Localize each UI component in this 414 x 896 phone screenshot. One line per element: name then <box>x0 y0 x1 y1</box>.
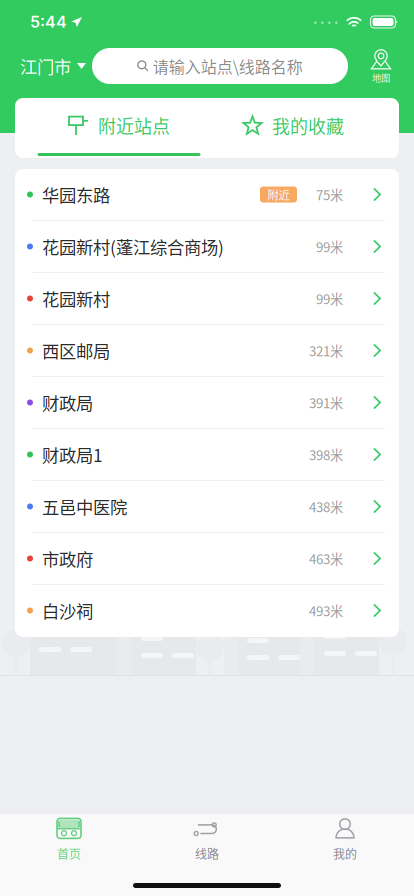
staticText: 99米 <box>316 289 343 308</box>
staticText: 我的 <box>333 845 357 862</box>
staticText: 438米 <box>309 497 343 516</box>
button[interactable]: 地图 <box>348 44 414 88</box>
button[interactable]: 江门市 <box>0 44 92 88</box>
staticText: • • • • <box>313 17 339 27</box>
staticText: 线路 <box>195 845 219 862</box>
staticText: 江门市 <box>20 53 71 79</box>
button[interactable]: 华园东路 <box>15 169 399 221</box>
staticText: 市政府 <box>42 546 93 571</box>
staticText: 5:44 <box>30 12 67 32</box>
staticText: 我的收藏 <box>272 112 344 139</box>
button[interactable]: 请输入站点\线路名称 <box>92 48 348 84</box>
staticText: 请输入站点\线路名称 <box>153 54 303 78</box>
staticText: 财政局 <box>42 390 93 415</box>
button[interactable]: 首页 <box>0 814 138 868</box>
staticText: 西区邮局 <box>42 338 110 363</box>
staticText: 75米 <box>316 185 343 204</box>
staticText: 地图 <box>372 71 390 84</box>
button[interactable]: 市政府 <box>15 533 399 585</box>
button[interactable]: 白沙祠 <box>15 585 399 637</box>
staticText: 463米 <box>309 549 343 568</box>
staticText: 99米 <box>316 237 343 256</box>
staticText: 白沙祠 <box>42 598 93 623</box>
button[interactable]: 花园新村 <box>15 273 399 325</box>
button[interactable]: 附近站点 <box>15 98 223 158</box>
staticText: 391米 <box>309 393 343 412</box>
staticText: 附近站点 <box>98 112 170 139</box>
staticText: 321米 <box>309 341 343 360</box>
staticText: 财政局1 <box>42 442 103 467</box>
button[interactable]: 财政局1 <box>15 429 399 481</box>
staticText: 花园新村 <box>42 286 110 311</box>
staticText: 附近 <box>267 186 289 203</box>
staticText: 398米 <box>309 445 343 464</box>
staticText: 首页 <box>57 845 81 862</box>
button[interactable]: 我的 <box>276 814 414 868</box>
button[interactable]: 我的收藏 <box>223 98 399 158</box>
staticText: 华园东路 <box>42 182 110 207</box>
staticText: 493米 <box>309 601 343 620</box>
staticText: 五邑中医院 <box>42 494 127 519</box>
button[interactable]: 花园新村(蓬江综合商场) <box>15 221 399 273</box>
button[interactable]: 线路 <box>138 814 276 868</box>
button[interactable]: 五邑中医院 <box>15 481 399 533</box>
staticText: 花园新村(蓬江综合商场) <box>42 234 224 259</box>
button[interactable]: 西区邮局 <box>15 325 399 377</box>
button[interactable]: 财政局 <box>15 377 399 429</box>
